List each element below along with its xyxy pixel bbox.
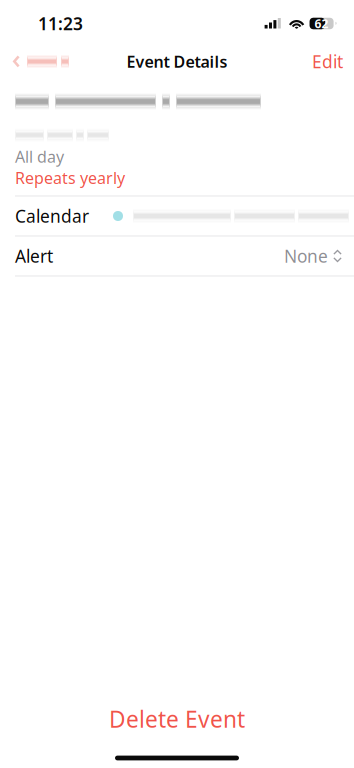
staticText: Edit	[312, 50, 343, 73]
staticText: Event Details	[126, 51, 227, 72]
button[interactable]: Alert	[0, 236, 354, 275]
staticText: All day	[15, 146, 64, 167]
staticText: Calendar	[15, 204, 89, 227]
staticText: 11:23	[38, 12, 83, 35]
button[interactable]: Calendar	[0, 196, 354, 235]
staticText: 62	[315, 15, 329, 31]
staticText: Repeats yearly	[15, 167, 125, 188]
button[interactable]: Delete Event	[0, 704, 354, 748]
button[interactable]: Edit	[298, 44, 354, 79]
button[interactable]: Back	[0, 49, 69, 73]
staticText: None	[284, 244, 328, 267]
staticText: Alert	[15, 244, 53, 267]
staticText: Delete Event	[109, 704, 245, 734]
